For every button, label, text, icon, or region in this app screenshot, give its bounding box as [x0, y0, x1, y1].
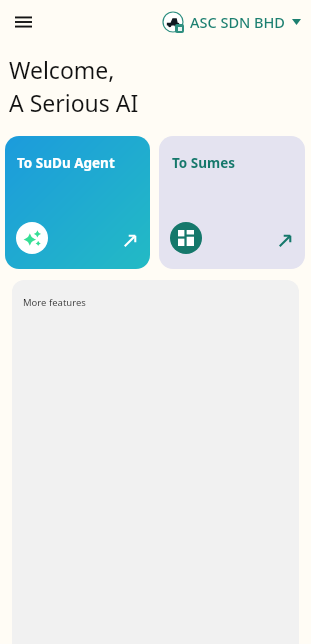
button[interactable]: To SuDu Agent [5, 136, 150, 269]
button[interactable]: To Sumes [159, 136, 305, 269]
staticText: To SuDu Agent [17, 154, 115, 172]
button[interactable]: ASC SDN BHD [158, 7, 305, 37]
staticText: Welcome, [9, 54, 115, 85]
staticText: More features [23, 296, 86, 309]
button[interactable]: Open navigation menu [6, 5, 40, 39]
staticText: To Sumes [172, 154, 236, 172]
staticText: A Serious AI [9, 87, 139, 118]
staticText: ASC SDN BHD [190, 12, 285, 32]
